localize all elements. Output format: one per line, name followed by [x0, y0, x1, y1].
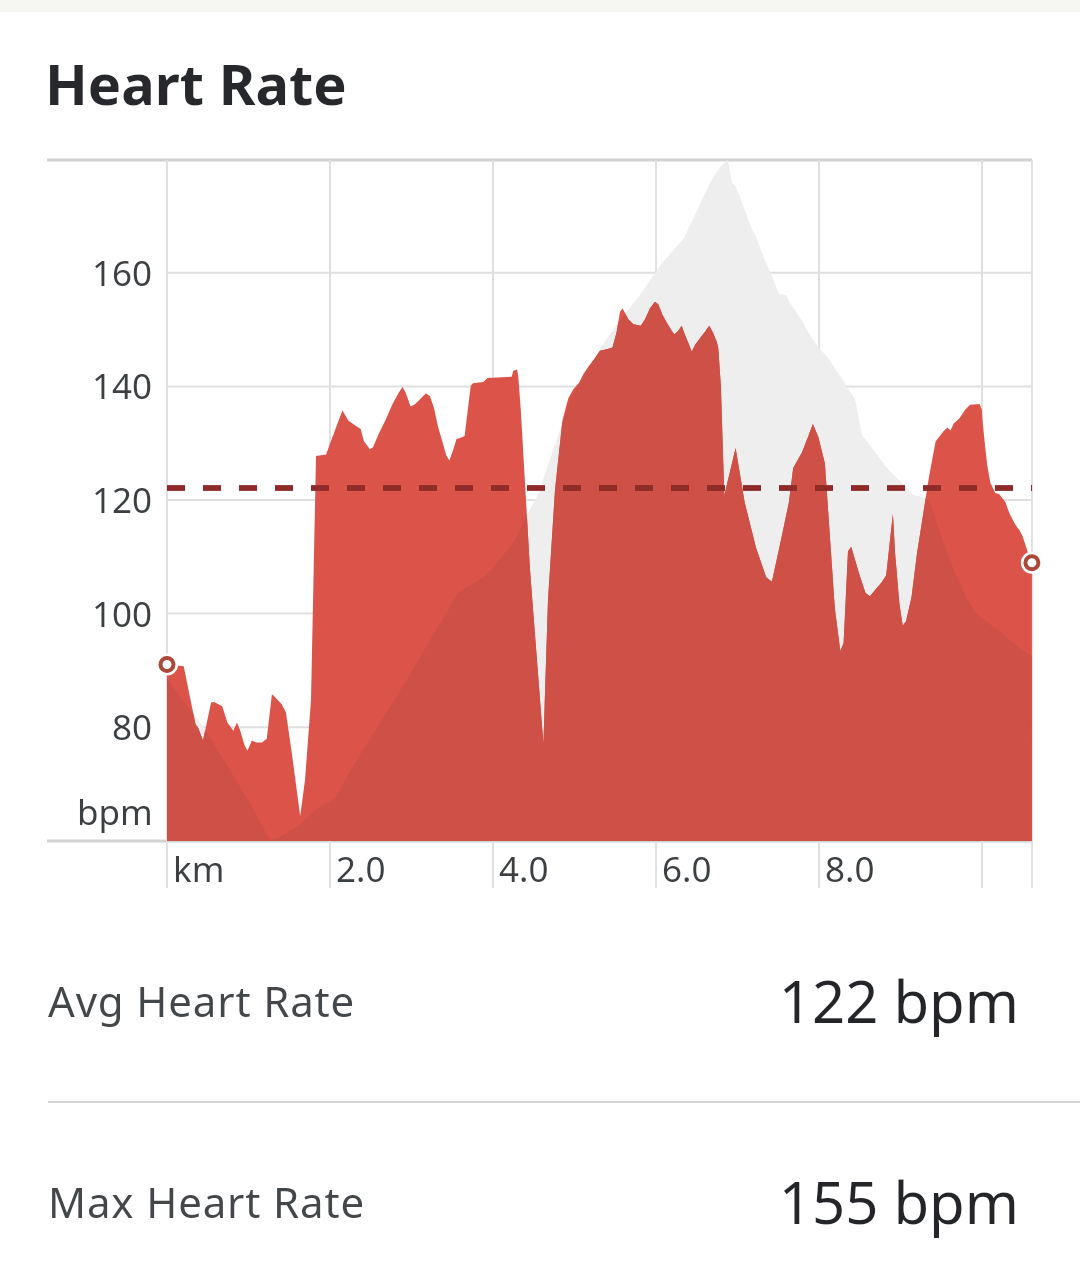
button[interactable]: Max Heart Rate: [0, 1101, 1080, 1278]
staticText: 160: [92, 249, 153, 297]
staticText: 155 bpm: [778, 1162, 1019, 1241]
staticText: 80: [112, 703, 153, 751]
staticText: 4.0: [499, 845, 549, 893]
staticText: Avg Heart Rate: [48, 972, 356, 1029]
staticText: 8.0: [825, 845, 875, 893]
button[interactable]: Avg Heart Rate: [0, 900, 1080, 1101]
staticText: Heart Rate: [45, 45, 347, 121]
staticText: 120: [92, 476, 153, 524]
staticText: Max Heart Rate: [48, 1173, 366, 1230]
staticText: 6.0: [662, 845, 712, 893]
staticText: bpm: [77, 788, 153, 836]
staticText: 100: [92, 590, 153, 638]
staticText: 122 bpm: [778, 961, 1019, 1040]
staticText: km: [173, 845, 225, 893]
staticText: 140: [92, 362, 153, 410]
staticText: 2.0: [336, 845, 386, 893]
